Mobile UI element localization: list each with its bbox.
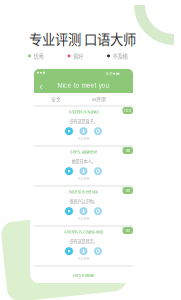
staticText: 点击录音 (77, 256, 89, 260)
staticText: He's Korean (73, 273, 94, 278)
staticText: 专业评测 口语大师 (29, 29, 136, 48)
staticText: Nice to meet you (69, 190, 98, 194)
staticText: 她是日本人。 (71, 158, 95, 164)
staticText: 98 (126, 148, 130, 153)
staticText: 全文 (51, 95, 61, 102)
staticText: 100 (124, 108, 132, 113)
staticText: 良好 (73, 52, 83, 60)
staticText: 不及格 (112, 52, 127, 60)
staticText: Nice to meet you (57, 82, 109, 89)
button[interactable]: Back (36, 81, 46, 93)
staticText: 还有这是直子。 (69, 118, 97, 124)
button[interactable]: 全文 (47, 93, 65, 105)
staticText: And this is Naoko (68, 110, 98, 114)
button[interactable]: 100 (34, 107, 133, 145)
staticText: 点击录音 (77, 216, 89, 220)
button[interactable]: ai评测 (88, 93, 110, 105)
staticText: 93 (126, 228, 130, 233)
staticText: ai评测 (92, 95, 106, 102)
staticText: 9:41 (106, 72, 112, 76)
staticText: 优秀 (33, 52, 43, 60)
staticText: 95 (126, 188, 130, 193)
staticText: And this is Chang-woo (64, 230, 103, 234)
staticText: 还有这是昌宇。 (69, 238, 97, 244)
staticText: She's Japanese (70, 150, 97, 154)
button[interactable]: 93 (34, 227, 133, 265)
staticText: 点击录音 (77, 176, 89, 180)
staticText: 点击录音 (77, 136, 89, 140)
staticText: 他是韩国人。 (71, 281, 95, 287)
button[interactable]: 98 (34, 147, 133, 185)
button[interactable]: 95 (34, 187, 133, 225)
staticText: 很高兴认识你。 (69, 198, 97, 204)
